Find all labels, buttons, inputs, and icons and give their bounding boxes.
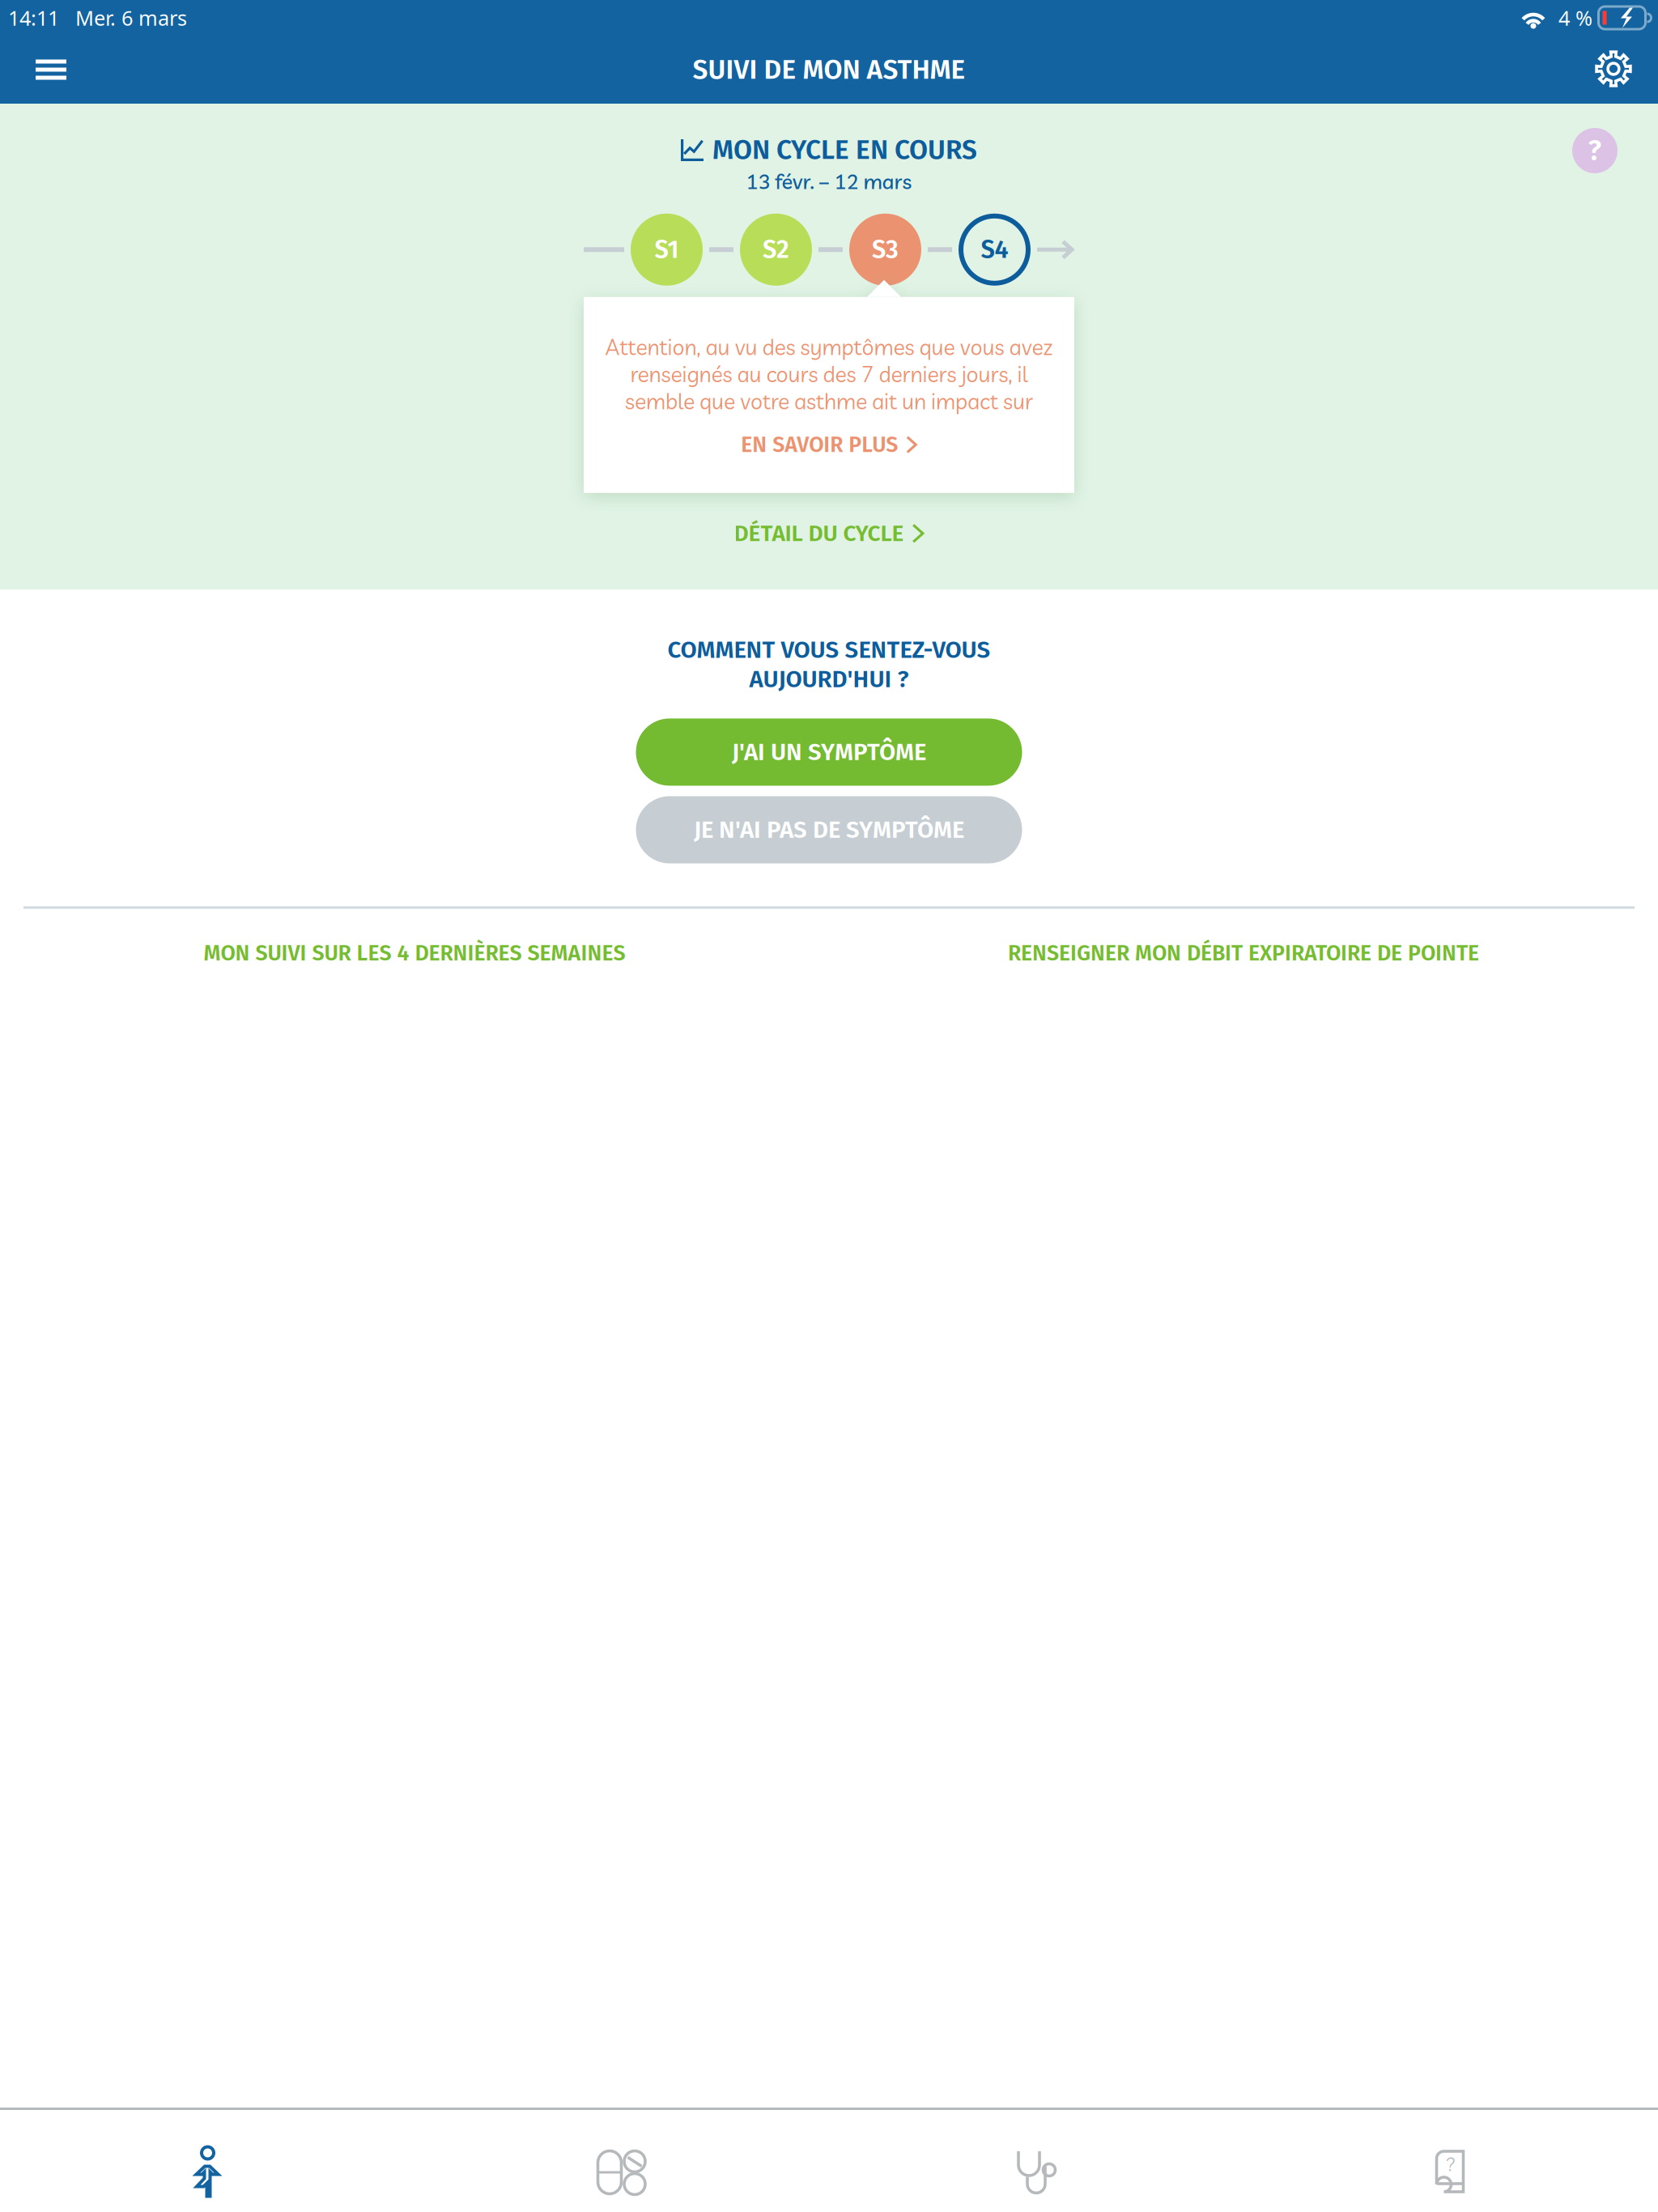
staticText: Attention, au vu des symptômes que vous … bbox=[605, 333, 1053, 361]
staticText: ? bbox=[1588, 134, 1602, 167]
staticText: J'AI UN SYMPTÔME bbox=[732, 738, 926, 766]
button[interactable]: JE N'AI PAS DE SYMPTÔME bbox=[636, 796, 1022, 863]
staticText: DÉTAIL DU CYCLE bbox=[734, 520, 904, 547]
staticText: 4 % bbox=[1558, 4, 1592, 32]
button[interactable]: DÉTAIL DU CYCLE bbox=[734, 508, 924, 559]
button[interactable]: Menu bbox=[15, 36, 87, 104]
staticText: EN SAVOIR PLUS bbox=[741, 432, 898, 458]
button[interactable]: J'AI UN SYMPTÔME bbox=[636, 718, 1022, 786]
button[interactable]: RENSEIGNER MON DÉBIT EXPIRATOIRE DE POIN… bbox=[829, 921, 1658, 986]
staticText: S3 bbox=[872, 235, 899, 265]
staticText: ? bbox=[1446, 2153, 1456, 2176]
button[interactable]: EN SAVOIR PLUS bbox=[741, 415, 917, 467]
staticText: MON CYCLE EN COURS bbox=[712, 134, 977, 166]
button[interactable]: Mon suivi bbox=[0, 2121, 414, 2212]
button[interactable]: Mon suivi médical bbox=[829, 2121, 1243, 2212]
button[interactable]: Aide et informations bbox=[1243, 2121, 1658, 2212]
staticText: S1 bbox=[655, 235, 679, 265]
button[interactable]: Mes traitements bbox=[414, 2121, 829, 2212]
staticText: Mer. 6 mars bbox=[75, 4, 187, 32]
staticText: semble que votre asthme ait un impact su… bbox=[625, 388, 1033, 415]
staticText: AUJOURD'HUI ? bbox=[749, 665, 909, 693]
staticText: MON SUIVI SUR LES 4 DERNIÈRES SEMAINES bbox=[204, 940, 625, 966]
staticText: JE N'AI PAS DE SYMPTÔME bbox=[694, 816, 964, 844]
staticText: RENSEIGNER MON DÉBIT EXPIRATOIRE DE POIN… bbox=[1008, 940, 1479, 966]
staticText: 14:11 bbox=[8, 4, 59, 32]
staticText: COMMENT VOUS SENTEZ-VOUS bbox=[667, 636, 991, 664]
staticText: 13 févr. – 12 mars bbox=[746, 168, 912, 194]
button[interactable]: MON SUIVI SUR LES 4 DERNIÈRES SEMAINES bbox=[0, 921, 829, 986]
staticText: S2 bbox=[763, 235, 789, 265]
staticText: renseignés au cours des 7 derniers jours… bbox=[630, 361, 1028, 388]
staticText: SUIVI DE MON ASTHME bbox=[693, 53, 965, 86]
staticText: S4 bbox=[981, 235, 1008, 265]
button[interactable]: Aide bbox=[1572, 128, 1618, 173]
button[interactable]: Réglages bbox=[1571, 36, 1643, 104]
